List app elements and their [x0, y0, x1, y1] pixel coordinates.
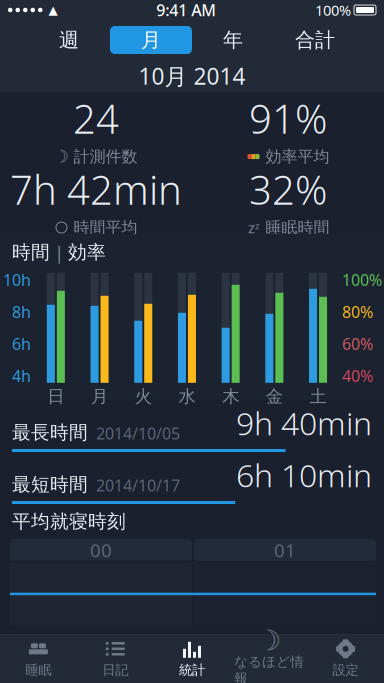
staticText: 効率平均	[265, 147, 329, 166]
button[interactable]: 10月 2014	[0, 60, 384, 92]
staticText: ☽	[53, 147, 69, 166]
staticText: 6h 10min	[236, 453, 372, 496]
staticText: 設定	[333, 662, 359, 678]
staticText: |	[54, 240, 64, 265]
staticText: 00	[90, 537, 112, 562]
staticText: 10h	[3, 269, 31, 290]
staticText: 木	[222, 386, 239, 407]
button[interactable]: 最短時間	[0, 452, 384, 504]
button[interactable]: 月	[110, 26, 192, 54]
staticText: ☽	[256, 625, 281, 656]
button[interactable]: 睡眠	[0, 634, 77, 683]
staticText: 2014/10/17	[96, 475, 180, 496]
staticText: 24	[73, 92, 119, 145]
staticText: 40%	[342, 365, 373, 386]
button[interactable]: 統計	[154, 634, 230, 683]
staticText: 100%	[315, 0, 351, 20]
staticText: 土	[310, 386, 327, 407]
staticText: 日記	[102, 662, 128, 678]
staticText: 睡眠	[25, 662, 51, 678]
staticText: 統計	[179, 662, 205, 678]
staticText: 4h	[12, 365, 31, 386]
staticText: 7h 42min	[10, 163, 182, 216]
staticText: 計測件数	[73, 147, 137, 166]
staticText: 2014/10/05	[96, 423, 180, 444]
staticText: ▲	[48, 3, 57, 17]
staticText: 最長時間	[12, 421, 88, 444]
button[interactable]: 合計	[274, 26, 356, 54]
button[interactable]: ☽	[230, 634, 307, 683]
staticText: 週	[59, 28, 79, 52]
button[interactable]: 週	[28, 26, 110, 54]
staticText: 9:41 AM	[156, 0, 216, 21]
staticText: zᶻ	[248, 218, 259, 237]
staticText: 8h	[12, 301, 31, 322]
staticText: 6h	[12, 333, 31, 354]
staticText: 睡眠時間	[265, 218, 329, 237]
staticText: 32%	[249, 163, 327, 216]
staticText: 火	[135, 386, 152, 407]
button[interactable]: 最長時間	[0, 400, 384, 452]
staticText: 60%	[342, 333, 373, 354]
staticText: 年	[223, 28, 243, 52]
staticText: 最短時間	[12, 473, 88, 496]
staticText: 01	[274, 537, 296, 562]
staticText: 金	[266, 386, 283, 407]
staticText: 80%	[342, 301, 373, 322]
button[interactable]: 設定	[307, 634, 384, 683]
staticText: 9h 40min	[236, 401, 372, 444]
staticText: 水	[178, 386, 195, 407]
staticText: なるほど情報	[234, 654, 303, 683]
button[interactable]: 年	[192, 26, 274, 54]
staticText: 91%	[249, 92, 327, 145]
staticText: 効率	[68, 241, 106, 264]
button[interactable]: 日記	[77, 634, 154, 683]
staticText: 100%	[342, 269, 382, 290]
staticText: 10月 2014	[138, 61, 245, 91]
staticText: 月	[91, 386, 108, 407]
staticText: 合計	[295, 28, 335, 52]
staticText: 日	[47, 386, 64, 407]
staticText: 時間	[12, 241, 50, 264]
staticText: 時間平均	[73, 218, 137, 237]
staticText: 平均就寝時刻	[12, 510, 126, 533]
staticText: 月	[141, 28, 161, 52]
